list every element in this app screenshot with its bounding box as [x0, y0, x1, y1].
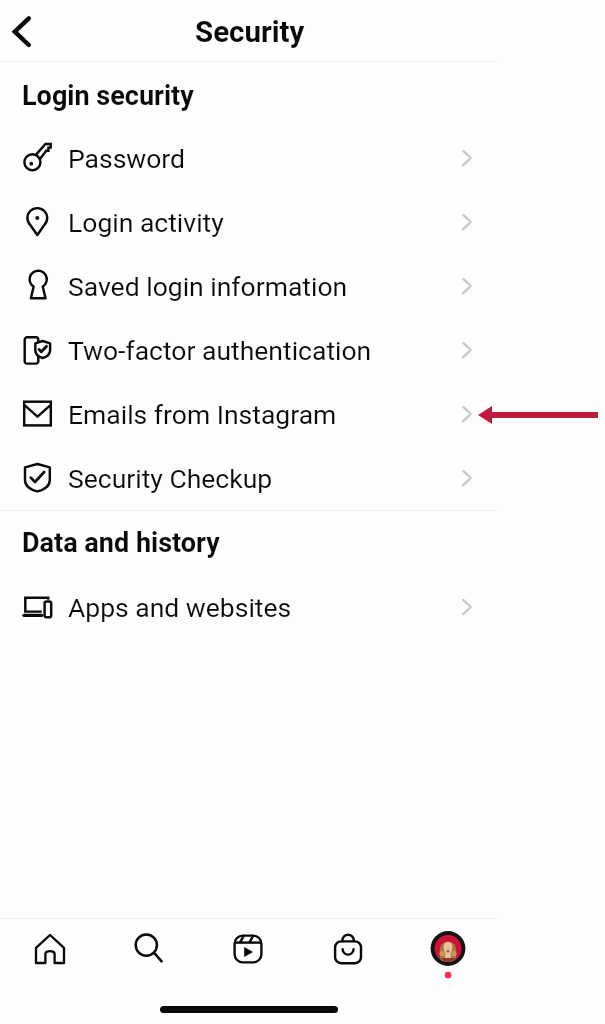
- staticText: Security Checkup: [68, 463, 273, 494]
- button[interactable]: Password: [0, 126, 498, 190]
- staticText: Data and history: [22, 527, 220, 559]
- staticText: Security: [195, 15, 305, 50]
- button[interactable]: Login activity: [0, 190, 498, 254]
- button[interactable]: Reels: [198, 916, 298, 981]
- button[interactable]: Two-factor authentication: [0, 318, 498, 382]
- staticText: Two-factor authentication: [68, 335, 372, 366]
- button[interactable]: Search: [99, 916, 198, 981]
- staticText: Apps and websites: [68, 592, 292, 623]
- button[interactable]: Emails from Instagram: [0, 382, 498, 446]
- button[interactable]: Profile: [398, 916, 498, 981]
- button[interactable]: Apps and websites: [0, 575, 498, 639]
- button[interactable]: Shop: [298, 916, 398, 981]
- button[interactable]: Saved login information: [0, 254, 498, 318]
- staticText: Password: [68, 143, 186, 174]
- button[interactable]: Back: [0, 9, 44, 53]
- staticText: Emails from Instagram: [68, 399, 337, 430]
- staticText: Saved login information: [68, 271, 348, 302]
- staticText: Login security: [22, 80, 194, 112]
- button[interactable]: Home: [0, 916, 99, 981]
- staticText: Login activity: [68, 207, 224, 238]
- button[interactable]: Security Checkup: [0, 446, 498, 510]
